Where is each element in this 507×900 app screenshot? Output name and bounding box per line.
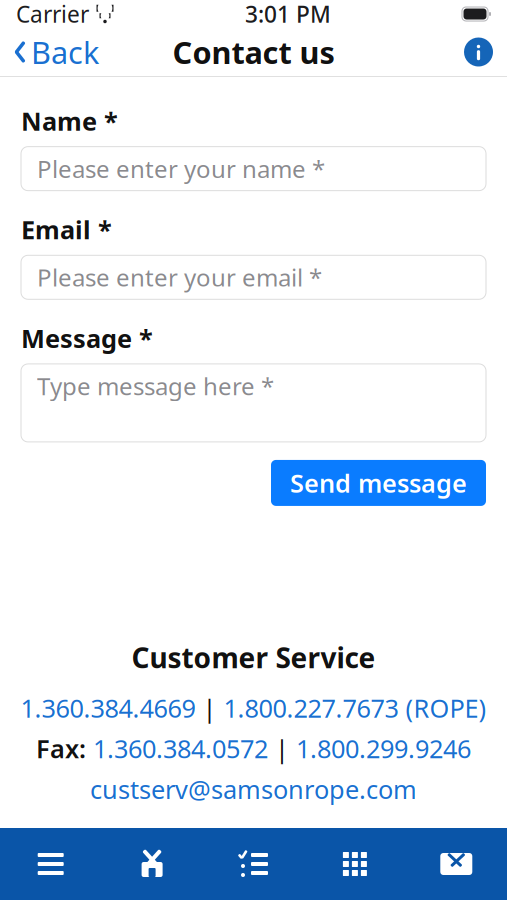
button[interactable]: Information — [450, 28, 507, 76]
staticText: Customer Service — [131, 639, 375, 676]
staticText: Message * — [21, 321, 153, 355]
staticText: Carrier — [16, 0, 89, 29]
button[interactable]: Apps — [304, 828, 406, 900]
button[interactable]: Back — [0, 28, 113, 76]
staticText: Contact us — [172, 32, 334, 72]
staticText: 1.360.384.0572 — [93, 732, 268, 765]
staticText: Name * — [21, 104, 118, 138]
button[interactable]: Mail — [406, 828, 507, 900]
staticText: Please enter your email * — [37, 261, 322, 293]
staticText: | — [195, 691, 223, 725]
staticText: Email * — [21, 213, 112, 246]
button[interactable]: Please enter your name * — [21, 147, 486, 191]
staticText: 1.360.384.4669 — [20, 691, 195, 725]
staticText: 1.800.227.7673 (ROPE) — [223, 691, 486, 725]
staticText: custserv@samsonrope.com — [90, 772, 417, 806]
button[interactable]: Send message — [271, 460, 486, 506]
button[interactable]: Menu — [0, 828, 101, 900]
button[interactable]: custserv@samsonrope.com — [90, 772, 417, 806]
button[interactable]: Type message here * — [21, 364, 486, 442]
staticText: 3:01 PM — [245, 0, 331, 29]
button[interactable]: Please enter your email * — [21, 255, 486, 299]
staticText: Fax: — [36, 732, 93, 765]
staticText: 1.800.299.9246 — [296, 732, 471, 765]
staticText: Back — [31, 32, 99, 72]
staticText: | — [268, 732, 296, 765]
staticText: Type message here * — [37, 370, 274, 402]
button[interactable]: Checklist — [203, 828, 304, 900]
staticText: Send message — [290, 466, 467, 500]
button[interactable]: Home — [101, 828, 203, 900]
staticText: Please enter your name * — [37, 153, 325, 185]
